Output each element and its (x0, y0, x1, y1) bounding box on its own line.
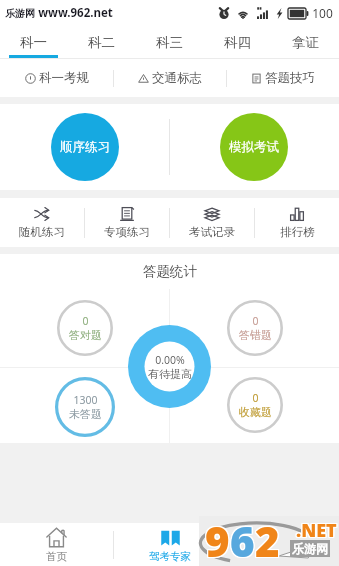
staticText: 2 (255, 513, 280, 563)
button[interactable]: 交通标志 (114, 59, 226, 97)
staticText: 6 (230, 513, 255, 563)
button[interactable]: 考试记录 (170, 198, 254, 247)
staticText: 未答题 (69, 407, 102, 421)
staticText: 2 (254, 512, 279, 562)
staticText: 0 (82, 314, 89, 328)
staticText: 6 (231, 513, 256, 563)
staticText: 2 (255, 512, 280, 562)
button[interactable]: 答题技巧 (227, 59, 339, 97)
staticText: 9 (206, 513, 231, 563)
button[interactable]: 模拟考试 (220, 113, 288, 181)
button[interactable]: 拿证 (271, 25, 339, 59)
staticText: .NET (296, 519, 337, 544)
staticText: .NET (296, 517, 337, 542)
staticText: 答题统计 (143, 263, 197, 280)
button[interactable]: 顺序练习 (51, 113, 119, 181)
button[interactable]: 0 (227, 300, 283, 356)
staticText: 2 (255, 511, 280, 561)
staticText: 6 (231, 511, 256, 561)
staticText: 6 (229, 511, 254, 561)
staticText: 随机练习 (19, 225, 65, 239)
staticText: 排行榜 (280, 225, 315, 239)
staticText: 模拟考试 (229, 139, 279, 155)
staticText: www.962.net (38, 5, 113, 21)
button[interactable]: 科三 (135, 25, 203, 59)
button[interactable]: 首页 (0, 523, 113, 566)
staticText: 专项练习 (104, 225, 150, 239)
staticText: 2 (256, 512, 281, 562)
staticText: .NET (296, 518, 337, 543)
staticText: 答错题 (239, 328, 272, 342)
button[interactable]: 科一 (0, 25, 67, 59)
button[interactable]: 0 (227, 377, 283, 433)
button[interactable]: 排行榜 (255, 198, 339, 247)
button[interactable]: 0 (57, 300, 113, 356)
staticText: 9 (206, 511, 231, 561)
staticText: 科四 (224, 34, 251, 51)
button[interactable]: 科四 (203, 25, 271, 59)
staticText: 6 (229, 513, 254, 563)
button[interactable]: 随机练习 (0, 198, 84, 247)
staticText: 100 (312, 5, 333, 21)
staticText: 乐游网 (292, 541, 328, 556)
staticText: .NET (297, 519, 338, 544)
staticText: .NET (295, 519, 336, 544)
staticText: 2 (256, 511, 281, 561)
staticText: 9 (204, 513, 229, 563)
staticText: 科二 (88, 34, 115, 51)
staticText: .NET (295, 517, 336, 542)
staticText: 1300 (73, 393, 98, 407)
staticText: 2 (256, 513, 281, 563)
button[interactable]: 1300 (55, 377, 115, 437)
staticText: 2 (254, 511, 279, 561)
staticText: 有待提高 (148, 367, 192, 381)
button[interactable]: 科一考规 (0, 59, 113, 97)
staticText: 收藏题 (239, 405, 272, 419)
staticText: 首页 (46, 550, 67, 563)
button[interactable]: 0.00% (128, 325, 211, 408)
staticText: 9 (204, 512, 229, 562)
staticText: 顺序练习 (60, 139, 110, 155)
staticText: 乐游网 (5, 7, 35, 20)
button[interactable]: 专项练习 (85, 198, 169, 247)
staticText: 6 (229, 512, 254, 562)
staticText: .NET (297, 517, 338, 542)
staticText: 拿证 (292, 34, 319, 51)
staticText: 0 (252, 314, 259, 328)
staticText: 9 (206, 512, 231, 562)
button[interactable]: 驾考专家 (114, 523, 226, 566)
staticText: 驾考专家 (149, 550, 191, 563)
button[interactable]: 我的 (227, 523, 339, 566)
staticText: 交通标志 (152, 70, 202, 86)
staticText: .NET (295, 518, 336, 543)
staticText: 0 (252, 391, 259, 405)
staticText: .NET (297, 518, 338, 543)
staticText: 科一 (20, 34, 47, 51)
staticText: 0.00% (155, 353, 185, 367)
button[interactable]: 科二 (67, 25, 135, 59)
staticText: 9 (205, 513, 230, 563)
staticText: 答题技巧 (265, 70, 315, 86)
staticText: 科一考规 (39, 70, 89, 86)
staticText: 考试记录 (189, 225, 235, 239)
staticText: 9 (204, 511, 229, 561)
staticText: 6 (231, 512, 256, 562)
staticText: 答对题 (69, 328, 102, 342)
staticText: 科三 (156, 34, 183, 51)
staticText: 我的 (273, 550, 294, 563)
staticText: 6 (230, 512, 255, 562)
staticText: 9 (205, 512, 230, 562)
staticText: 6 (230, 511, 255, 561)
staticText: 9 (205, 511, 230, 561)
staticText: 2 (254, 513, 279, 563)
